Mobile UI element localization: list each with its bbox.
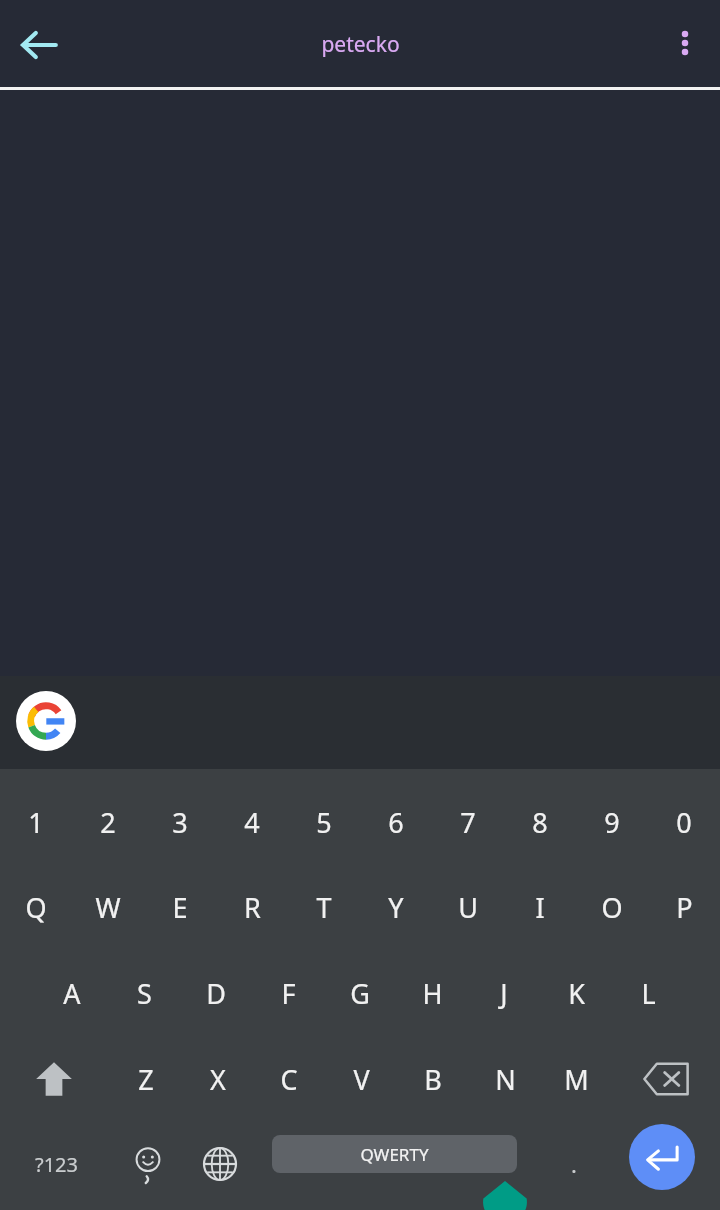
button[interactable]: G [324, 957, 396, 1029]
staticText: F [281, 975, 296, 1012]
staticText: O [601, 889, 623, 926]
button[interactable]: 0 [648, 786, 720, 858]
button[interactable]: 4 [216, 786, 288, 858]
button[interactable]: 2 [72, 786, 144, 858]
button[interactable]: H [396, 957, 468, 1029]
button[interactable]: Enter [629, 1124, 695, 1190]
staticText: E [172, 889, 188, 926]
staticText: 7 [460, 804, 476, 841]
staticText: S [137, 975, 152, 1012]
button[interactable]: O [576, 871, 648, 943]
button[interactable]: More options [654, 12, 716, 74]
staticText: T [316, 889, 332, 926]
button[interactable]: R [216, 871, 288, 943]
staticText: J [500, 975, 508, 1012]
staticText: 0 [676, 804, 692, 841]
button[interactable]: U [432, 871, 504, 943]
button[interactable]: 5 [288, 786, 360, 858]
button[interactable]: A [36, 957, 108, 1029]
staticText: Q [25, 889, 47, 926]
staticText: . [571, 1149, 577, 1179]
staticText: P [676, 889, 693, 926]
staticText: 5 [316, 804, 332, 841]
button[interactable]: 8 [504, 786, 576, 858]
button[interactable]: T [288, 871, 360, 943]
staticText: 3 [172, 804, 188, 841]
staticText: I [535, 889, 545, 926]
button[interactable]: D [180, 957, 252, 1029]
button[interactable]: M [540, 1043, 612, 1115]
button[interactable]: Z [110, 1043, 182, 1115]
button[interactable]: Q [0, 871, 72, 943]
staticText: N [495, 1061, 516, 1098]
staticText: 4 [244, 804, 260, 841]
staticText: 8 [532, 804, 548, 841]
staticText: A [63, 975, 81, 1012]
button[interactable]: V [325, 1043, 397, 1115]
staticText: Z [138, 1061, 154, 1098]
button[interactable]: 7 [432, 786, 504, 858]
staticText: petecko [321, 30, 400, 59]
button[interactable]: Shift [6, 1043, 102, 1115]
button[interactable]: Change keyboard language [182, 1127, 258, 1201]
staticText: M [564, 1061, 589, 1098]
staticText: K [568, 975, 585, 1012]
button[interactable]: Back [8, 14, 70, 76]
button[interactable]: J [468, 957, 540, 1029]
button[interactable]: 6 [360, 786, 432, 858]
staticText: H [422, 975, 443, 1012]
staticText: V [353, 1061, 370, 1098]
button[interactable]: E [144, 871, 216, 943]
button[interactable]: I [504, 871, 576, 943]
staticText: L [641, 975, 656, 1012]
button[interactable]: L [612, 957, 684, 1029]
button[interactable]: F [252, 957, 324, 1029]
staticText: X [210, 1061, 226, 1098]
staticText: 1 [28, 804, 44, 841]
button[interactable]: N [469, 1043, 541, 1115]
staticText: 9 [604, 804, 620, 841]
button[interactable]: Google search [16, 691, 76, 751]
staticText: U [458, 889, 478, 926]
button[interactable]: 3 [144, 786, 216, 858]
staticText: 2 [100, 804, 116, 841]
staticText: Y [388, 889, 404, 926]
button[interactable]: petecko [321, 30, 400, 59]
button[interactable]: W [72, 871, 144, 943]
staticText: D [206, 975, 226, 1012]
button[interactable]: QWERTY [272, 1135, 517, 1173]
button[interactable]: C [253, 1043, 325, 1115]
staticText: ?123 [35, 1151, 78, 1178]
button[interactable]: ?123 [12, 1127, 100, 1201]
staticText: G [350, 975, 370, 1012]
button[interactable]: P [648, 871, 720, 943]
staticText: C [280, 1061, 298, 1098]
staticText: B [424, 1061, 442, 1098]
staticText: QWERTY [360, 1143, 429, 1166]
button[interactable]: 1 [0, 786, 72, 858]
staticText: W [95, 889, 121, 926]
button[interactable]: Y [360, 871, 432, 943]
button[interactable]: B [397, 1043, 469, 1115]
staticText: R [244, 889, 261, 926]
button[interactable]: Backspace [618, 1043, 714, 1115]
button[interactable]: . [540, 1127, 608, 1201]
staticText: 6 [388, 804, 404, 841]
button[interactable]: K [540, 957, 612, 1029]
button[interactable]: Emoji [110, 1127, 186, 1201]
button[interactable]: X [182, 1043, 254, 1115]
button[interactable]: S [108, 957, 180, 1029]
button[interactable]: 9 [576, 786, 648, 858]
